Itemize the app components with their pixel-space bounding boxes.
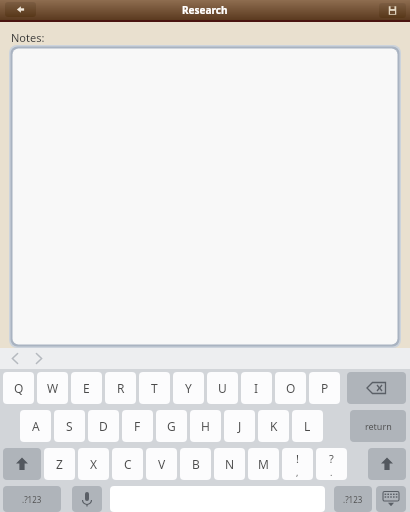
staticText: F [134, 418, 141, 434]
button[interactable]: W [37, 372, 68, 404]
staticText: Notes: [11, 30, 45, 45]
button[interactable]: B [180, 448, 211, 480]
staticText: ! [296, 451, 299, 466]
staticText: K [270, 418, 278, 434]
button[interactable]: J [224, 410, 255, 442]
staticText: C [124, 456, 132, 472]
button[interactable]: Shift [3, 448, 41, 480]
staticText: O [286, 380, 296, 396]
staticText: U [218, 380, 227, 396]
staticText: E [83, 380, 90, 396]
button[interactable]: C [112, 448, 143, 480]
staticText: N [225, 456, 235, 472]
staticText: I [254, 380, 259, 396]
staticText: J [238, 418, 242, 434]
staticText: . [330, 466, 333, 478]
staticText: R [117, 380, 125, 396]
staticText: X [90, 456, 98, 472]
staticText: B [192, 456, 200, 472]
staticText: Z [56, 456, 63, 472]
button[interactable] [9, 45, 401, 348]
button[interactable]: Dictate [72, 486, 102, 512]
staticText: V [158, 456, 166, 472]
staticText: P [321, 380, 329, 396]
button[interactable]: N [214, 448, 245, 480]
staticText: return [365, 420, 392, 432]
button[interactable]: Save [379, 3, 406, 18]
button[interactable]: G [156, 410, 187, 442]
staticText: W [47, 380, 59, 396]
button[interactable]: F [122, 410, 153, 442]
staticText: M [258, 456, 269, 472]
button[interactable]: M [248, 448, 279, 480]
staticText: Y [185, 380, 192, 396]
staticText: G [167, 418, 176, 434]
staticText: .?123 [22, 494, 42, 505]
button[interactable]: Z [44, 448, 75, 480]
button[interactable]: T [139, 372, 170, 404]
button[interactable]: O [275, 372, 306, 404]
staticText: ? [329, 451, 334, 466]
button[interactable]: .?123 [334, 486, 372, 512]
staticText: Research [182, 3, 228, 17]
button[interactable]: I [241, 372, 272, 404]
button[interactable]: return [350, 410, 406, 442]
button[interactable]: Previous field [3, 348, 27, 369]
button[interactable]: Back [5, 2, 36, 17]
staticText: L [304, 418, 311, 434]
button[interactable]: Hide keyboard [376, 486, 406, 512]
button[interactable]: H [190, 410, 221, 442]
button[interactable]: R [105, 372, 136, 404]
button[interactable]: Next field [27, 348, 51, 369]
button[interactable]: X [78, 448, 109, 480]
button[interactable]: K [258, 410, 289, 442]
button[interactable]: ! [282, 448, 313, 480]
button[interactable]: Q [3, 372, 34, 404]
button[interactable]: .?123 [3, 486, 61, 512]
staticText: .?123 [343, 494, 363, 505]
button[interactable]: P [309, 372, 340, 404]
staticText: A [32, 418, 40, 434]
button[interactable]: E [71, 372, 102, 404]
button[interactable]: L [292, 410, 323, 442]
staticText: H [201, 418, 210, 434]
button[interactable]: U [207, 372, 238, 404]
button[interactable]: V [146, 448, 177, 480]
button[interactable]: A [20, 410, 51, 442]
staticText: D [99, 418, 108, 434]
staticText: Q [14, 380, 24, 396]
button[interactable]: D [88, 410, 119, 442]
button[interactable]: Y [173, 372, 204, 404]
staticText: T [151, 380, 158, 396]
button[interactable]: Backspace [347, 372, 406, 404]
button[interactable]: S [54, 410, 85, 442]
button[interactable]: ? [316, 448, 347, 480]
button[interactable]: Shift [368, 448, 406, 480]
staticText: S [66, 418, 73, 434]
staticText: , [296, 466, 299, 478]
